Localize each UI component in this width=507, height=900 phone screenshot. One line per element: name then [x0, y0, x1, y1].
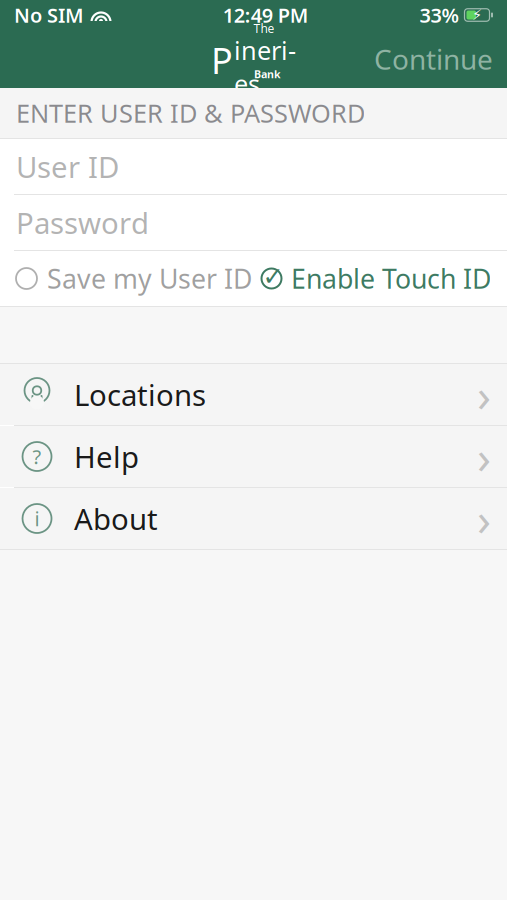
staticText: Password [16, 203, 149, 242]
button[interactable]: ? [0, 426, 507, 487]
staticText: About [74, 499, 158, 538]
button[interactable]: Locations [0, 364, 507, 425]
staticText: User ID [16, 147, 119, 186]
staticText: › [477, 488, 491, 549]
button[interactable]: i [0, 488, 507, 549]
staticText: Locations [74, 375, 206, 414]
staticText: 12:49 PM [223, 2, 309, 28]
staticText: The [253, 20, 274, 36]
button[interactable]: ✓ [260, 251, 491, 306]
button[interactable]: Continue [360, 30, 507, 88]
staticText: › [477, 364, 491, 425]
staticText: Continue [374, 40, 493, 78]
staticText: P [211, 36, 233, 84]
staticText: › [477, 426, 491, 487]
button[interactable]: Save my User ID [16, 251, 252, 306]
staticText: ENTER USER ID & PASSWORD [16, 96, 365, 130]
staticText: Enable Touch ID [291, 261, 491, 296]
staticText: ? [32, 443, 41, 470]
staticText: ineries [234, 33, 296, 101]
staticText: No SIM [14, 2, 84, 28]
staticText: Bank [254, 67, 281, 81]
staticText: ⚡︎ [472, 7, 482, 23]
staticText: ✓ [262, 262, 283, 291]
staticText: 33% [419, 2, 459, 28]
staticText: Help [74, 437, 139, 476]
staticText: Save my User ID [47, 261, 252, 296]
staticText: i [34, 505, 39, 532]
